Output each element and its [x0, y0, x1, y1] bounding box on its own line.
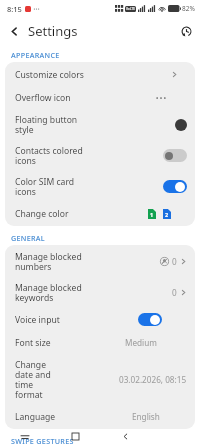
button[interactable]: Floating button style — [5, 109, 195, 140]
staticText: Font size — [15, 337, 51, 349]
staticText: 1 — [150, 211, 154, 218]
button[interactable]: Recents — [0, 426, 50, 446]
staticText: Floating button style — [15, 114, 91, 135]
staticText: 82% — [182, 4, 195, 13]
staticText: Language — [15, 411, 56, 423]
staticText: VoLTE — [126, 7, 135, 11]
button[interactable]: Off — [163, 149, 187, 162]
staticText: Manage blocked keywords — [15, 282, 89, 303]
button[interactable]: Restore defaults — [172, 17, 200, 45]
staticText: 2 — [165, 211, 169, 218]
button[interactable]: Home — [50, 426, 100, 446]
staticText: Overflow icon — [15, 92, 71, 104]
staticText: APPEARANCE — [11, 50, 60, 60]
staticText: Medium — [125, 337, 157, 348]
button[interactable]: Back — [0, 17, 28, 45]
button[interactable]: Manage blocked keywords — [5, 277, 195, 308]
staticText: 0 — [172, 287, 177, 298]
button[interactable]: Language — [5, 405, 195, 428]
button[interactable]: Manage blocked numbers — [5, 246, 195, 277]
staticText: GENERAL — [11, 233, 45, 243]
button[interactable]: Change color — [5, 202, 195, 225]
button[interactable]: On — [163, 180, 187, 193]
button[interactable]: Change date and time format — [5, 354, 195, 405]
staticText: English — [132, 411, 160, 422]
button[interactable]: SIM 1 color — [148, 209, 156, 219]
staticText: Change color — [15, 208, 69, 220]
staticText: Manage blocked numbers — [15, 251, 83, 272]
button[interactable]: SIM 2 color — [163, 209, 171, 219]
button[interactable]: Color SIM card icons — [5, 171, 195, 202]
staticText: Contacts colored icons — [15, 145, 85, 166]
button[interactable]: Overflow icon — [5, 86, 195, 109]
button[interactable]: On — [138, 313, 162, 326]
staticText: 03.02.2026, 08:15 — [119, 374, 187, 385]
staticText: SWIPE GESTURES — [11, 436, 74, 444]
staticText: Color SIM card icons — [15, 176, 85, 197]
staticText: Voice input — [15, 314, 60, 326]
button[interactable]: Font size — [5, 331, 195, 354]
staticText: Settings — [28, 22, 78, 40]
staticText: 8:15 — [7, 4, 22, 14]
staticText: Customize colors — [15, 69, 84, 81]
button[interactable]: Voice input — [5, 308, 195, 331]
staticText: Change date and time format — [15, 359, 63, 400]
button[interactable]: Contacts colored icons — [5, 140, 195, 171]
staticText: 0 — [172, 256, 177, 267]
button[interactable]: Back — [100, 426, 150, 446]
button[interactable]: Customize colors — [5, 63, 195, 86]
